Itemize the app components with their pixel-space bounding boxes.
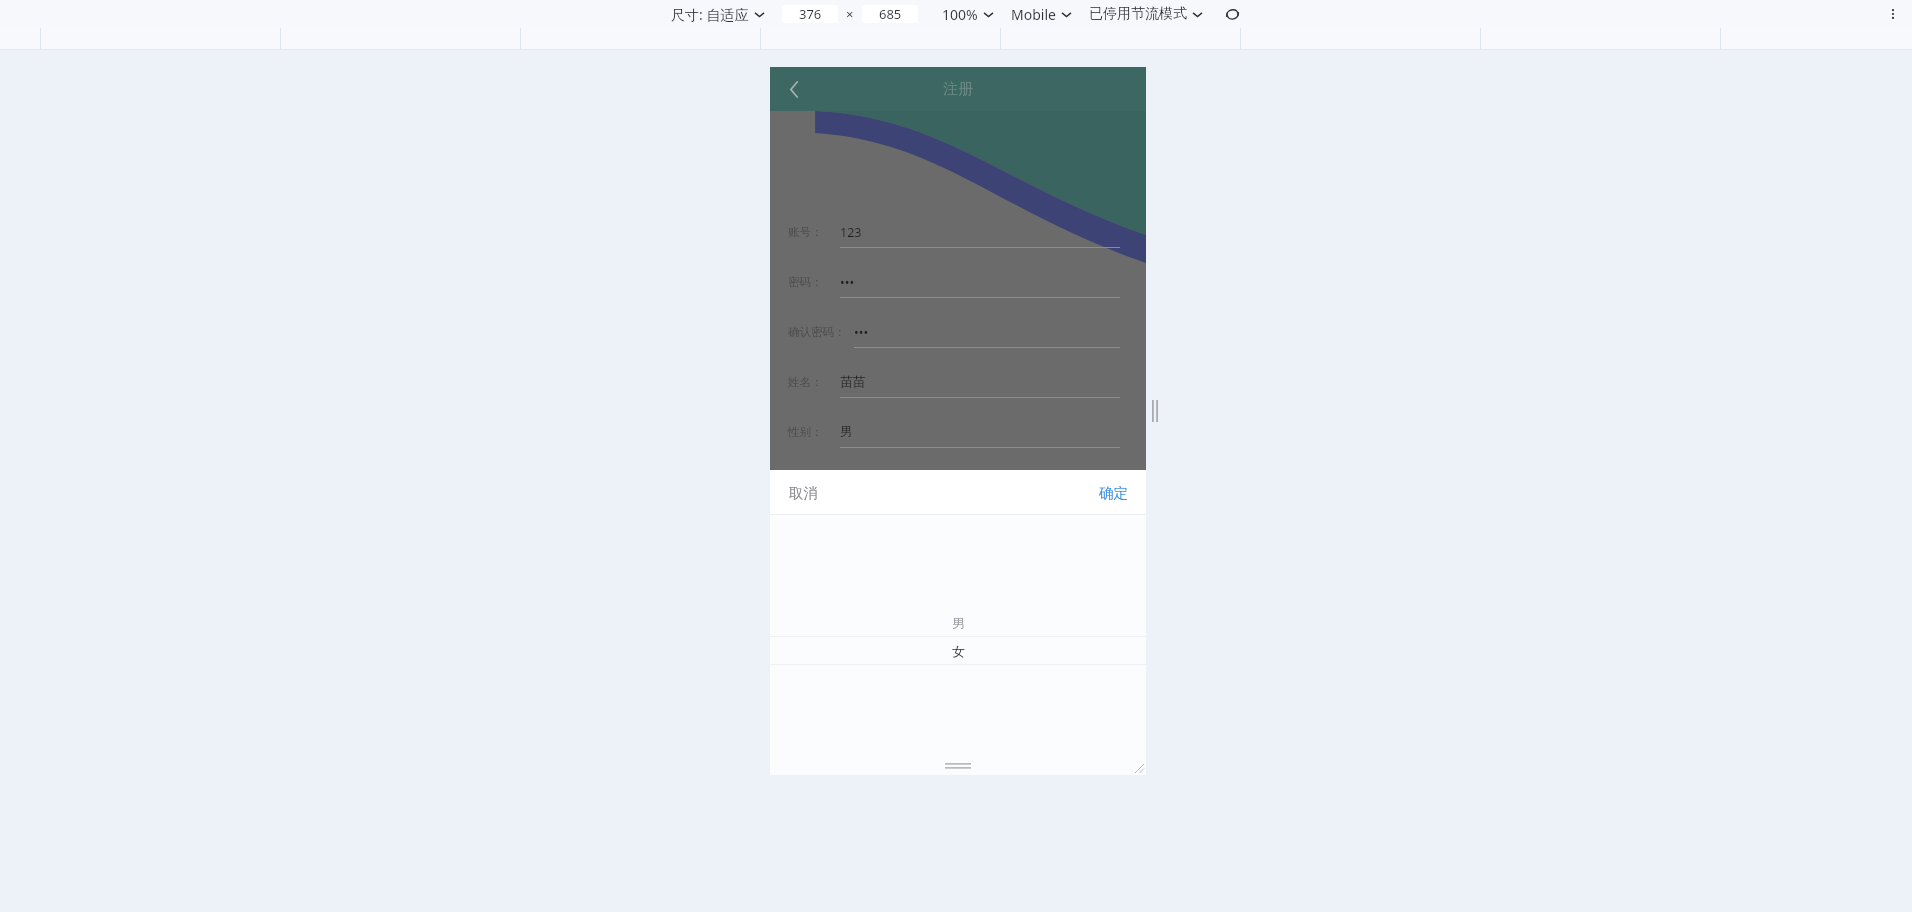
staticText: 女 <box>952 643 965 659</box>
button[interactable]: Resize width <box>1149 398 1161 424</box>
staticText: 已停用节流模式 <box>1089 5 1187 23</box>
staticText: 确定 <box>1099 484 1128 502</box>
button[interactable]: 账号： <box>788 217 1120 247</box>
button[interactable]: 确认密码： <box>788 317 1120 347</box>
button[interactable]: 男 <box>770 609 1146 636</box>
staticText: 账号： <box>788 225 823 239</box>
staticText: 密码： <box>788 275 823 289</box>
staticText: 685 <box>879 5 902 23</box>
staticText: 376 <box>799 5 822 23</box>
button[interactable]: Back <box>778 73 810 105</box>
button[interactable]: Rotate <box>1222 4 1242 24</box>
button[interactable]: 685 <box>862 5 918 23</box>
button[interactable]: 女 <box>770 637 1146 664</box>
button[interactable]: 376 <box>782 5 838 23</box>
button[interactable]: 性别： <box>788 417 1120 447</box>
staticText: × <box>846 5 854 23</box>
staticText: ••• <box>854 324 869 341</box>
button[interactable]: 确定 <box>1086 470 1140 515</box>
staticText: 男 <box>840 424 853 440</box>
staticText: 123 <box>840 224 862 241</box>
staticText: 100% <box>942 5 978 24</box>
staticText: 男 <box>952 615 965 631</box>
staticText: Mobile <box>1011 5 1056 24</box>
staticText: 尺寸: 自适应 <box>671 5 749 24</box>
button[interactable]: 密码： <box>788 267 1120 297</box>
staticText: 姓名： <box>788 375 823 389</box>
staticText: 确认密码： <box>788 325 846 339</box>
staticText: 取消 <box>789 484 818 502</box>
staticText: ••• <box>840 274 855 291</box>
staticText: 性别： <box>788 425 823 439</box>
staticText: 注册 <box>943 80 973 99</box>
button[interactable]: 姓名： <box>788 367 1120 397</box>
button[interactable]: More options <box>1884 5 1902 23</box>
button[interactable]: 取消 <box>776 470 830 515</box>
staticText: 苗苗 <box>840 374 865 390</box>
